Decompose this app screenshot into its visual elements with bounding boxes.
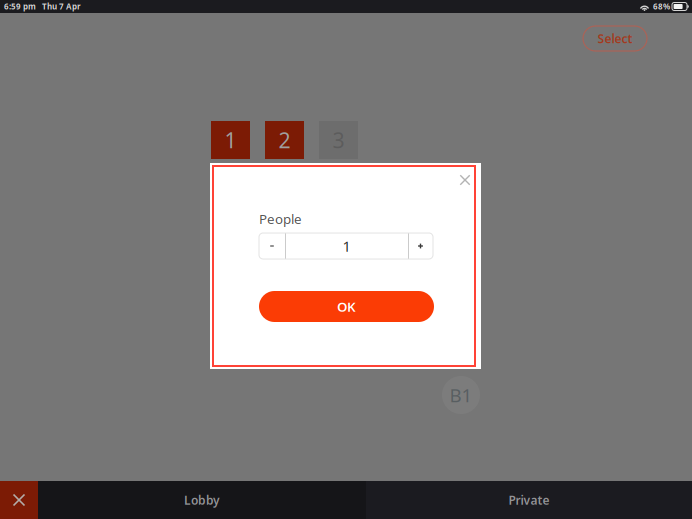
button[interactable]: OK [259,291,434,322]
button[interactable]: Decrease [259,233,285,259]
button[interactable]: Select [583,26,647,51]
staticText: OK [337,298,356,315]
button[interactable]: Close [454,169,476,191]
button[interactable]: Private [366,481,692,519]
staticText: B1 [449,383,472,407]
button[interactable]: Lobby [38,481,366,519]
staticText: Lobby [184,492,220,508]
staticText: 2 [278,126,290,154]
staticText: Select [597,30,632,46]
staticText: People [259,210,302,228]
staticText: 6:59 pm [4,1,36,12]
staticText: 1 [342,236,350,256]
button[interactable]: Dismiss [0,481,38,519]
staticText: 1 [224,126,236,154]
staticText: Private [508,492,549,508]
staticText: 3 [332,126,344,154]
button[interactable]: 1 [211,121,250,159]
staticText: Thu 7 Apr [42,1,81,12]
button[interactable]: B1 [442,376,480,414]
button[interactable]: Increase [408,233,433,259]
staticText: 68% [653,1,670,12]
button[interactable]: 2 [265,121,304,159]
